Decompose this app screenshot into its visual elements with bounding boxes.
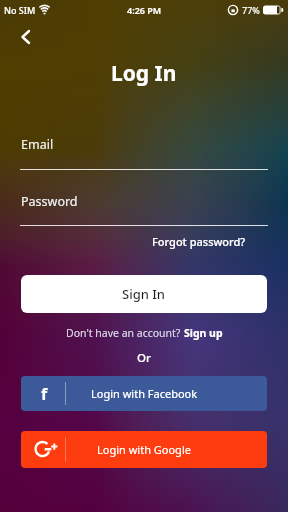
button[interactable]: Don't have an account? bbox=[66, 326, 223, 340]
button[interactable] bbox=[10, 24, 42, 50]
staticText: No SIM bbox=[4, 4, 36, 16]
staticText: Email bbox=[21, 136, 54, 153]
staticText: Sign In bbox=[122, 285, 166, 303]
button[interactable]: Forgot password? bbox=[152, 234, 246, 249]
staticText: Forgot password? bbox=[152, 234, 246, 249]
button[interactable]: f bbox=[21, 376, 267, 411]
staticText: Login with Facebook bbox=[91, 386, 198, 401]
button[interactable]: Login with Google bbox=[21, 431, 267, 468]
staticText: 77% bbox=[242, 4, 260, 16]
staticText: Or bbox=[137, 350, 151, 366]
button[interactable]: Sign In bbox=[21, 275, 267, 313]
staticText: Sign up bbox=[184, 326, 223, 340]
staticText: Login with Google bbox=[97, 442, 191, 457]
staticText: 4:26 PM bbox=[127, 4, 162, 16]
staticText: f bbox=[41, 383, 48, 405]
staticText: Log In bbox=[111, 59, 177, 88]
staticText: Don't have an account? bbox=[66, 326, 184, 340]
staticText: Password bbox=[21, 193, 78, 210]
